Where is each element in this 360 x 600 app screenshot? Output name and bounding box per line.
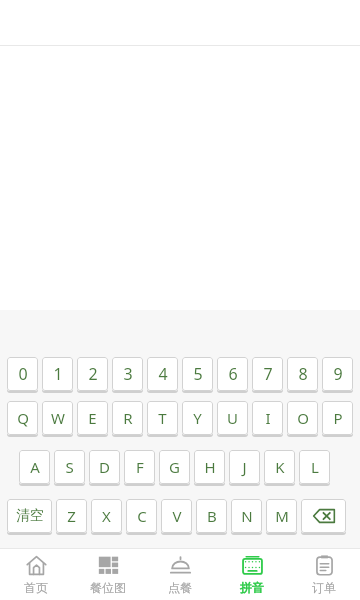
- staticText: P: [333, 408, 343, 428]
- staticText: V: [172, 506, 182, 526]
- staticText: 1: [53, 363, 63, 385]
- button[interactable]: 8: [287, 357, 318, 393]
- button[interactable]: 9: [322, 357, 353, 393]
- button[interactable]: X: [91, 499, 122, 535]
- button[interactable]: 订单: [288, 549, 360, 600]
- staticText: F: [136, 457, 144, 477]
- staticText: J: [242, 457, 247, 477]
- button[interactable]: 0: [7, 357, 38, 393]
- staticText: I: [265, 408, 271, 428]
- staticText: 首页: [24, 580, 48, 595]
- button[interactable]: 首页: [0, 549, 72, 600]
- staticText: C: [137, 506, 147, 526]
- staticText: E: [88, 408, 97, 428]
- staticText: 3: [123, 363, 133, 385]
- button[interactable]: 点餐: [144, 549, 216, 600]
- button[interactable]: A: [19, 450, 50, 486]
- staticText: H: [204, 457, 216, 477]
- staticText: 6: [228, 363, 238, 385]
- staticText: K: [275, 457, 285, 477]
- button[interactable]: R: [112, 401, 143, 437]
- button[interactable]: 1: [42, 357, 73, 393]
- staticText: W: [51, 408, 65, 428]
- staticText: 9: [333, 363, 343, 385]
- button[interactable]: Z: [56, 499, 87, 535]
- button[interactable]: C: [126, 499, 157, 535]
- staticText: 点餐: [168, 580, 192, 595]
- button[interactable]: M: [266, 499, 297, 535]
- button[interactable]: T: [147, 401, 178, 437]
- button[interactable]: 拼音: [216, 549, 288, 600]
- staticText: Q: [17, 408, 29, 428]
- staticText: X: [102, 506, 111, 526]
- button[interactable]: J: [229, 450, 260, 486]
- staticText: 餐位图: [90, 580, 126, 595]
- button[interactable]: P: [322, 401, 353, 437]
- staticText: 7: [263, 363, 273, 385]
- staticText: L: [311, 457, 319, 477]
- staticText: A: [30, 457, 40, 477]
- staticText: B: [207, 506, 217, 526]
- staticText: D: [99, 457, 110, 477]
- staticText: U: [227, 408, 238, 428]
- staticText: R: [123, 408, 133, 428]
- staticText: 0: [18, 363, 28, 385]
- button[interactable]: 清空: [7, 499, 52, 535]
- button[interactable]: B: [196, 499, 227, 535]
- button[interactable]: Y: [182, 401, 213, 437]
- staticText: N: [241, 506, 253, 526]
- button[interactable]: O: [287, 401, 318, 437]
- button[interactable]: W: [42, 401, 73, 437]
- staticText: Z: [67, 506, 76, 526]
- staticText: S: [65, 457, 74, 477]
- staticText: 2: [88, 363, 98, 385]
- staticText: 8: [298, 363, 308, 385]
- button[interactable]: 3: [112, 357, 143, 393]
- button[interactable]: Backspace: [301, 499, 346, 535]
- button[interactable]: L: [299, 450, 330, 486]
- staticText: O: [297, 408, 309, 428]
- button[interactable]: V: [161, 499, 192, 535]
- staticText: T: [158, 408, 167, 428]
- staticText: 订单: [312, 580, 336, 595]
- staticText: G: [169, 457, 180, 477]
- button[interactable]: N: [231, 499, 262, 535]
- button[interactable]: 7: [252, 357, 283, 393]
- button[interactable]: E: [77, 401, 108, 437]
- button[interactable]: 餐位图: [72, 549, 144, 600]
- button[interactable]: F: [124, 450, 155, 486]
- button[interactable]: U: [217, 401, 248, 437]
- button[interactable]: 4: [147, 357, 178, 393]
- button[interactable]: S: [54, 450, 85, 486]
- staticText: 4: [158, 363, 168, 385]
- button[interactable]: 5: [182, 357, 213, 393]
- button[interactable]: D: [89, 450, 120, 486]
- staticText: Y: [193, 408, 202, 428]
- staticText: 清空: [16, 507, 44, 525]
- staticText: 5: [193, 363, 203, 385]
- button[interactable]: H: [194, 450, 225, 486]
- staticText: M: [275, 506, 289, 526]
- button[interactable]: 6: [217, 357, 248, 393]
- button[interactable]: G: [159, 450, 190, 486]
- button[interactable]: K: [264, 450, 295, 486]
- button[interactable]: I: [252, 401, 283, 437]
- staticText: 拼音: [240, 580, 264, 595]
- button[interactable]: 2: [77, 357, 108, 393]
- button[interactable]: Q: [7, 401, 38, 437]
